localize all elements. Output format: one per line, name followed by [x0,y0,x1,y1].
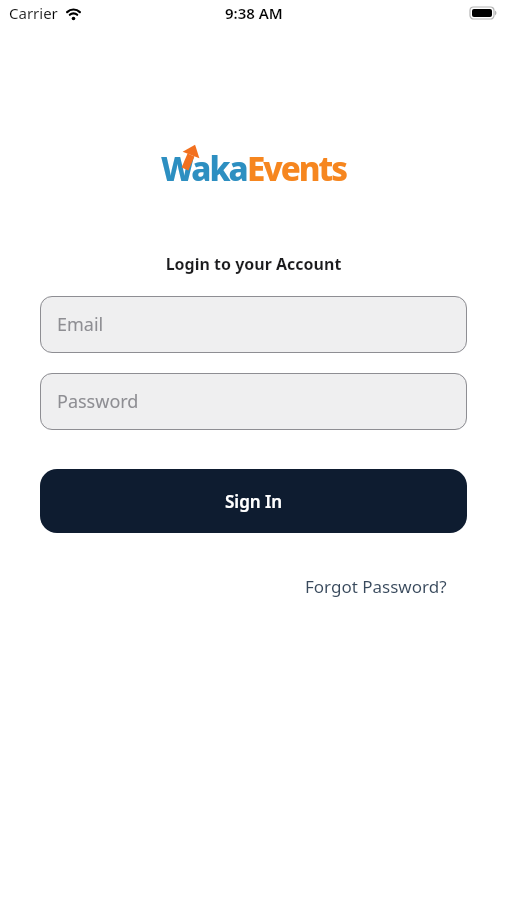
staticText: Login to your Account [0,253,507,275]
staticText: Email [57,312,104,337]
staticText: Carrier [9,3,58,23]
staticText: 9:38 AM [225,3,283,23]
staticText: Password [57,389,139,414]
staticText: Forgot Password? [305,575,447,598]
staticText: Waka [161,146,247,191]
staticText: Sign In [225,490,283,513]
button[interactable]: Forgot Password? [305,575,447,598]
staticText: Events [247,146,347,191]
button[interactable]: Sign In [40,469,467,533]
button[interactable]: Password [40,373,467,430]
button[interactable]: Email [40,296,467,353]
